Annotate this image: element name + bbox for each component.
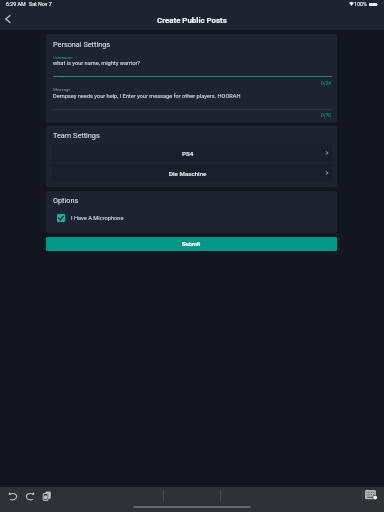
- button[interactable]: Die Maschine: [52, 164, 332, 182]
- staticText: Team Settings: [53, 131, 100, 140]
- staticText: Message: [53, 87, 71, 92]
- staticText: Create Public Posts: [157, 16, 227, 25]
- staticText: 0/70: [321, 113, 332, 119]
- button[interactable]: I Have A Microphone: [57, 214, 124, 222]
- button[interactable]: PS4: [52, 144, 332, 162]
- staticText: what is your name, mighty warrior?: [53, 60, 141, 67]
- staticText: Username: [53, 55, 73, 60]
- staticText: Personal Settings: [53, 40, 111, 49]
- staticText: Submit: [182, 241, 201, 248]
- staticText: I Have A Microphone: [71, 215, 124, 222]
- button[interactable]: Undo: [7, 490, 19, 502]
- staticText: PS4: [182, 150, 194, 157]
- button[interactable]: Copy: [41, 490, 53, 502]
- staticText: 100%: [354, 1, 367, 7]
- staticText: 0/24: [321, 81, 332, 87]
- staticText: Die Maschine: [169, 170, 207, 177]
- button[interactable]: Submit: [46, 237, 337, 251]
- button[interactable]: Switch keyboard: [363, 488, 379, 504]
- button[interactable]: Redo: [24, 490, 36, 502]
- staticText: 6:29 AM: [6, 1, 26, 7]
- staticText: Dempsey needs your help, l Enter your me…: [53, 93, 241, 100]
- button[interactable]: Back: [0, 12, 17, 30]
- staticText: Sat Nov 7: [29, 1, 52, 7]
- staticText: Options: [53, 196, 79, 205]
